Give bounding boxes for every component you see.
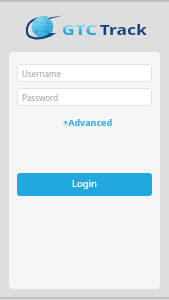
staticText: GTC [62, 21, 98, 39]
staticText: Track [100, 21, 148, 39]
other: GTC Track logo [26, 12, 66, 42]
button[interactable]: +Advanced [59, 113, 117, 131]
button[interactable]: Login [17, 173, 152, 196]
button[interactable]: Password [17, 88, 152, 106]
staticText: Password [22, 92, 59, 103]
button[interactable]: Username [17, 64, 152, 82]
staticText: +Advanced [63, 116, 113, 128]
staticText: Username [22, 68, 61, 79]
staticText: Login [72, 177, 97, 190]
